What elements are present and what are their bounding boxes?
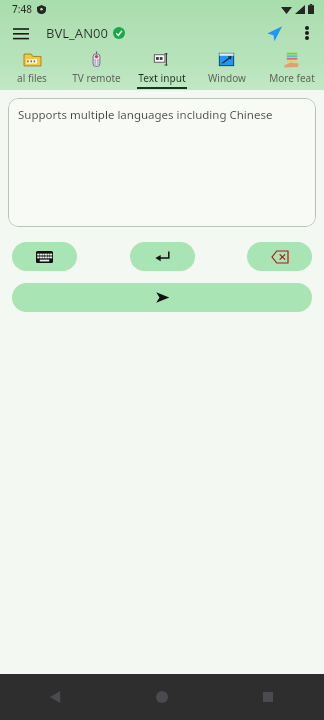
staticText: Window (208, 71, 246, 85)
button[interactable]: Text input (129, 48, 194, 89)
button[interactable]: Home (146, 681, 178, 713)
button[interactable]: More feat (259, 48, 324, 87)
button[interactable]: TV remote (64, 48, 129, 87)
staticText: Text input (138, 71, 186, 85)
button[interactable]: Pointer (260, 19, 288, 47)
button[interactable]: Recent apps (252, 681, 284, 713)
staticText: BVL_AN00 (46, 24, 108, 42)
staticText: al files (17, 71, 47, 85)
staticText: 7:48 (12, 2, 32, 16)
button[interactable]: Menu (6, 18, 36, 48)
button[interactable]: Send (12, 283, 312, 312)
button[interactable]: Supports multiple languages including Ch… (8, 98, 316, 227)
button[interactable]: al files (0, 48, 64, 87)
button[interactable]: Back (40, 681, 72, 713)
staticText: More feat (269, 71, 315, 85)
button[interactable]: Keyboard (12, 242, 77, 271)
button[interactable]: Window (194, 48, 259, 87)
staticText: TV remote (72, 71, 121, 85)
button[interactable]: Enter (130, 242, 195, 271)
button[interactable]: More options (293, 19, 321, 47)
button[interactable]: Backspace (247, 242, 312, 271)
staticText: Supports multiple languages including Ch… (18, 107, 273, 123)
